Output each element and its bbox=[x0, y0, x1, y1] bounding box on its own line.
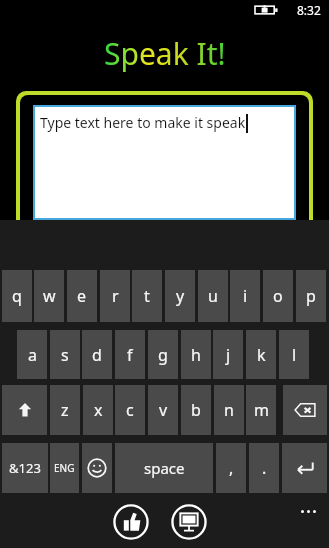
staticText: u bbox=[208, 285, 218, 307]
button[interactable]: Enter bbox=[282, 443, 327, 493]
button[interactable]: m bbox=[246, 385, 276, 435]
staticText: k bbox=[257, 344, 266, 366]
staticText: z bbox=[61, 399, 69, 421]
button[interactable]: Type text here to make it speak bbox=[33, 105, 296, 220]
button[interactable]: space bbox=[115, 443, 213, 493]
staticText: a bbox=[28, 344, 37, 366]
staticText: d bbox=[92, 344, 102, 366]
staticText: w bbox=[43, 285, 56, 307]
button[interactable]: &123 bbox=[2, 443, 48, 493]
button[interactable]: Speak bbox=[113, 504, 149, 540]
button[interactable]: d bbox=[82, 330, 112, 379]
button[interactable]: Backspace bbox=[283, 385, 327, 435]
button[interactable]: a bbox=[17, 330, 47, 379]
button[interactable]: t bbox=[132, 270, 162, 322]
button[interactable]: ENG bbox=[50, 443, 79, 493]
button[interactable]: w bbox=[34, 270, 64, 322]
staticText: &123 bbox=[9, 459, 41, 477]
button[interactable]: Emoji bbox=[82, 443, 112, 493]
button[interactable]: h bbox=[181, 330, 211, 379]
staticText: p bbox=[306, 285, 316, 307]
staticText: e bbox=[77, 285, 87, 307]
button[interactable]: g bbox=[148, 330, 178, 379]
staticText: x bbox=[94, 399, 103, 421]
button[interactable]: v bbox=[148, 385, 178, 435]
staticText: h bbox=[191, 344, 201, 366]
button[interactable]: c bbox=[115, 385, 145, 435]
button[interactable]: x bbox=[83, 385, 113, 435]
staticText: 8:32 bbox=[297, 2, 321, 18]
button[interactable]: Shift bbox=[2, 385, 47, 435]
staticText: c bbox=[126, 399, 134, 421]
button[interactable]: e bbox=[67, 270, 97, 322]
button[interactable]: z bbox=[50, 385, 80, 435]
button[interactable]: o bbox=[263, 270, 293, 322]
button[interactable]: b bbox=[181, 385, 211, 435]
button[interactable]: p bbox=[296, 270, 326, 322]
button[interactable]: j bbox=[213, 330, 243, 379]
staticText: j bbox=[226, 344, 231, 366]
button[interactable]: q bbox=[2, 270, 32, 322]
staticText: f bbox=[127, 344, 133, 366]
button[interactable]: . bbox=[249, 443, 279, 493]
staticText: space bbox=[144, 458, 185, 478]
staticText: . bbox=[262, 457, 267, 479]
staticText: l bbox=[292, 344, 297, 366]
button[interactable]: , bbox=[216, 443, 246, 493]
staticText: ENG bbox=[54, 461, 75, 475]
staticText: t bbox=[144, 285, 150, 307]
button[interactable]: k bbox=[246, 330, 276, 379]
staticText: s bbox=[61, 344, 69, 366]
staticText: , bbox=[229, 457, 234, 479]
button[interactable]: n bbox=[214, 385, 244, 435]
staticText: m bbox=[254, 399, 269, 421]
staticText: g bbox=[158, 344, 168, 366]
staticText: i bbox=[243, 285, 248, 307]
staticText: b bbox=[191, 399, 201, 421]
button[interactable]: s bbox=[50, 330, 80, 379]
staticText: Speak It! bbox=[104, 33, 226, 74]
staticText: Type text here to make it speak bbox=[40, 113, 246, 132]
button[interactable]: More options bbox=[297, 506, 320, 517]
button[interactable]: l bbox=[279, 330, 309, 379]
button[interactable]: Keyboard bbox=[171, 504, 207, 540]
staticText: n bbox=[224, 399, 234, 421]
staticText: v bbox=[159, 399, 168, 421]
button[interactable]: f bbox=[115, 330, 145, 379]
staticText: y bbox=[176, 285, 185, 307]
button[interactable]: u bbox=[198, 270, 228, 322]
button[interactable]: i bbox=[230, 270, 260, 322]
button[interactable]: y bbox=[165, 270, 195, 322]
staticText: q bbox=[12, 285, 22, 307]
button[interactable]: r bbox=[100, 270, 130, 322]
staticText: r bbox=[112, 285, 119, 307]
staticText: o bbox=[273, 285, 283, 307]
